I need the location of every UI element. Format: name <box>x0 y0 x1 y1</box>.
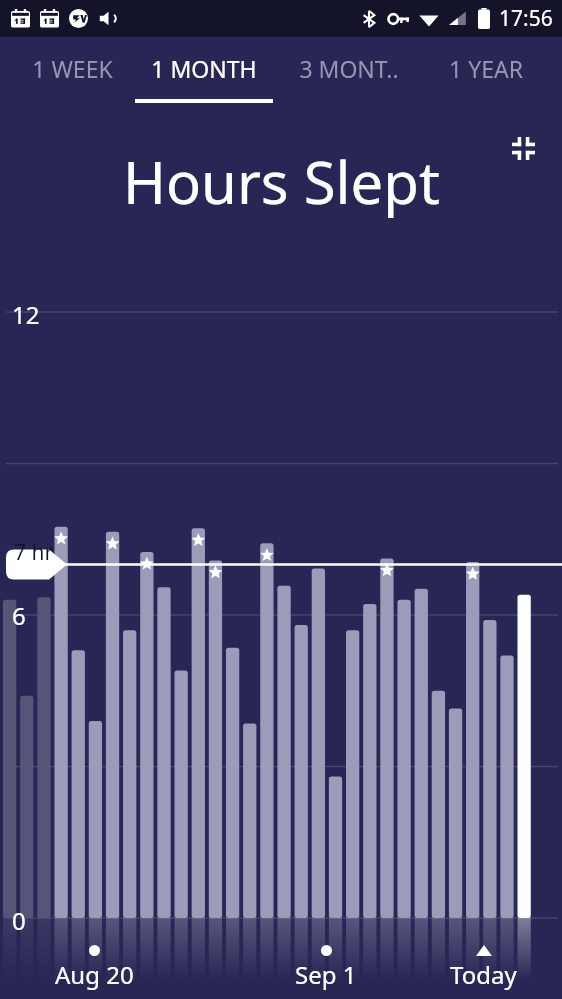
button[interactable]: 1 WEEK <box>12 37 133 113</box>
button[interactable]: Collapse chart <box>506 131 540 165</box>
staticText: Hours Slept <box>123 142 440 221</box>
staticText: 12 <box>12 298 40 331</box>
staticText: 3 MONT.. <box>299 53 399 84</box>
staticText: 1 YEAR <box>449 53 523 84</box>
staticText: 1 WEEK <box>32 53 113 84</box>
staticText: 0 <box>12 904 26 937</box>
button[interactable]: 3 MONT.. <box>275 37 422 113</box>
staticText: Aug 20 <box>55 958 134 991</box>
staticText: 1 MONTH <box>151 53 257 84</box>
staticText: 7 hr <box>14 538 54 567</box>
button[interactable]: 1 MONTH <box>133 37 275 113</box>
staticText: 17:56 <box>499 4 553 33</box>
staticText: Sep 1 <box>295 958 357 991</box>
staticText: Today <box>450 958 517 991</box>
staticText: 6 <box>12 599 26 632</box>
button[interactable]: 1 YEAR <box>422 37 550 113</box>
